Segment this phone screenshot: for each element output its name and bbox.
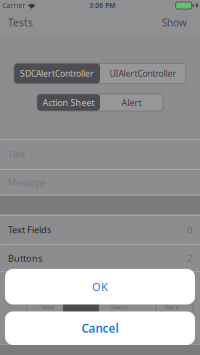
staticText: Tests — [8, 16, 33, 29]
button[interactable]: Buttons — [0, 245, 200, 272]
staticText: Alert — [121, 96, 141, 109]
staticText: 2 — [187, 252, 192, 264]
button[interactable]: Cancel — [5, 311, 195, 345]
button[interactable]: UIAlertController — [100, 63, 186, 84]
button[interactable]: Show — [162, 16, 187, 29]
staticText: UIAlertController — [109, 68, 176, 79]
staticText: Show — [162, 16, 187, 29]
staticText: 0 — [187, 224, 192, 236]
button[interactable]: OK — [5, 269, 195, 304]
staticText: Bar b — [165, 303, 178, 311]
staticText: OK — [92, 279, 108, 294]
staticText: 3:06 PM — [89, 1, 115, 10]
staticText: Switch — [111, 303, 127, 311]
staticText: Buttons — [8, 252, 42, 264]
staticText: Action Sheet — [42, 96, 94, 109]
staticText: None — [41, 303, 54, 311]
staticText: Carrier — [2, 1, 25, 10]
staticText: Cancel — [81, 320, 118, 336]
staticText: SDCAlertController — [20, 68, 94, 79]
button[interactable]: Text Fields — [0, 215, 200, 244]
staticText: Title — [8, 148, 25, 160]
staticText: Text Fields — [8, 224, 51, 236]
staticText: Message — [8, 176, 45, 188]
button[interactable]: Alert — [100, 94, 163, 111]
button[interactable]: Action Sheet — [37, 94, 100, 111]
staticText: Co — [7, 303, 13, 311]
button[interactable]: SDCAlertController — [14, 63, 100, 84]
